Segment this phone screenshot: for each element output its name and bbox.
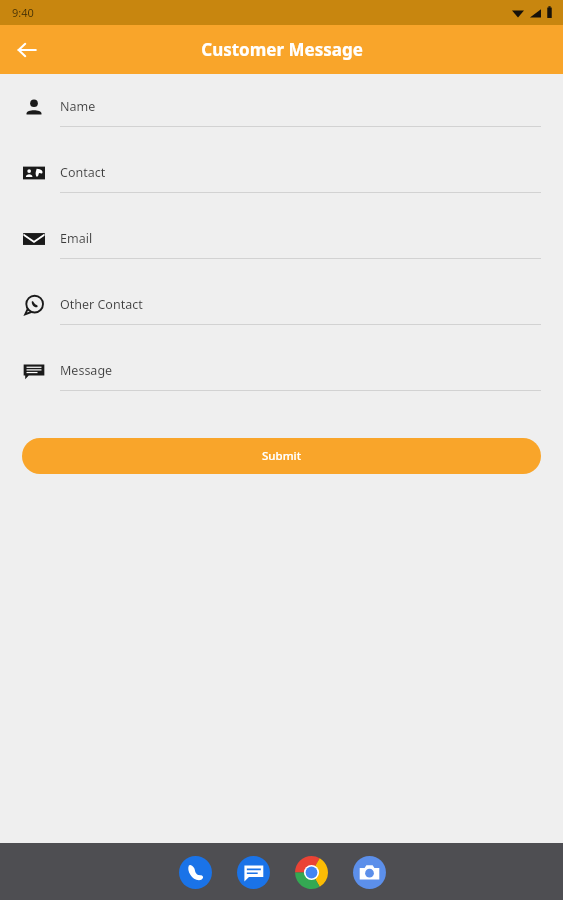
button[interactable]: Email bbox=[0, 218, 563, 284]
button[interactable]: Name bbox=[0, 86, 563, 152]
button[interactable]: Messages bbox=[235, 854, 271, 890]
staticText: 9:40 bbox=[12, 5, 34, 20]
button[interactable]: Other Contact bbox=[0, 284, 563, 350]
button[interactable]: Camera bbox=[351, 854, 387, 890]
button[interactable]: Back bbox=[6, 29, 48, 71]
staticText: Customer Message bbox=[201, 38, 363, 61]
button[interactable]: Submit bbox=[22, 438, 541, 474]
staticText: Submit bbox=[262, 448, 302, 464]
button[interactable]: Phone bbox=[177, 854, 213, 890]
button[interactable]: Message bbox=[0, 350, 563, 416]
staticText: Message bbox=[60, 362, 113, 379]
staticText: Email bbox=[60, 230, 93, 247]
button[interactable]: Contact bbox=[0, 152, 563, 218]
staticText: Name bbox=[60, 98, 96, 115]
staticText: Contact bbox=[60, 164, 106, 181]
staticText: Other Contact bbox=[60, 296, 143, 313]
button[interactable]: Chrome bbox=[293, 854, 329, 890]
